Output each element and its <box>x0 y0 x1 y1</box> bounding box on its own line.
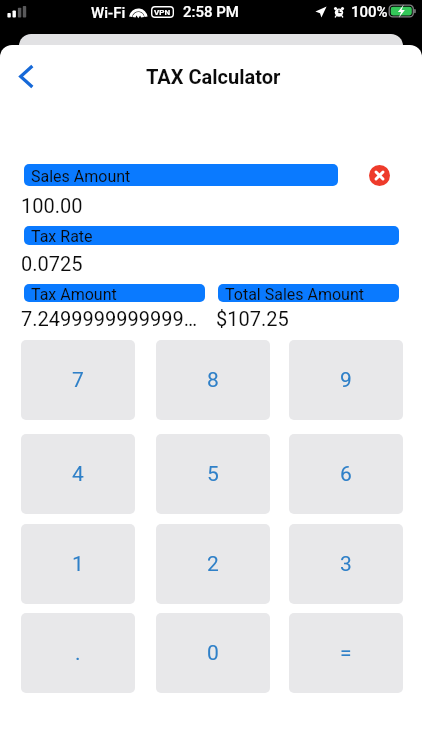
button[interactable]: 0 <box>156 613 270 693</box>
button[interactable]: . <box>21 613 135 693</box>
button[interactable]: 3 <box>289 524 403 604</box>
staticText: Sales Amount <box>31 167 131 186</box>
button[interactable]: 1 <box>21 524 135 604</box>
staticText: 100.00 <box>21 194 83 217</box>
staticText: = <box>340 641 352 666</box>
staticText: 7 <box>72 368 84 393</box>
staticText: 3 <box>340 552 352 577</box>
staticText: 2 <box>207 552 219 577</box>
button[interactable]: Clear <box>369 165 390 186</box>
staticText: 4 <box>72 462 84 487</box>
button[interactable]: 8 <box>156 340 270 420</box>
button[interactable]: 9 <box>289 340 403 420</box>
staticText: Wi-Fi <box>91 4 126 22</box>
staticText: 0 <box>207 641 219 666</box>
staticText: 9 <box>340 368 352 393</box>
staticText: 1 <box>72 552 84 577</box>
staticText: 2:58 PM <box>183 3 239 21</box>
staticText: 100% <box>351 3 388 21</box>
button[interactable]: 4 <box>21 434 135 514</box>
button[interactable]: 7 <box>21 340 135 420</box>
staticText: TAX Calculator <box>146 65 281 88</box>
staticText: 0.0725 <box>21 252 83 275</box>
staticText: . <box>75 641 81 666</box>
staticText: VPN <box>154 8 171 17</box>
staticText: Tax Rate <box>31 227 93 245</box>
staticText: 5 <box>207 462 219 487</box>
button[interactable]: 5 <box>156 434 270 514</box>
button[interactable]: 6 <box>289 434 403 514</box>
staticText: 8 <box>207 368 219 393</box>
staticText: $107.25 <box>216 307 289 330</box>
button[interactable]: Back <box>8 58 44 94</box>
button[interactable]: 2 <box>156 524 270 604</box>
staticText: Total Sales Amount <box>225 285 364 302</box>
staticText: Tax Amount <box>31 285 117 302</box>
staticText: 6 <box>340 462 352 487</box>
staticText: 7.2499999999999… <box>21 307 198 330</box>
button[interactable]: = <box>289 613 403 693</box>
